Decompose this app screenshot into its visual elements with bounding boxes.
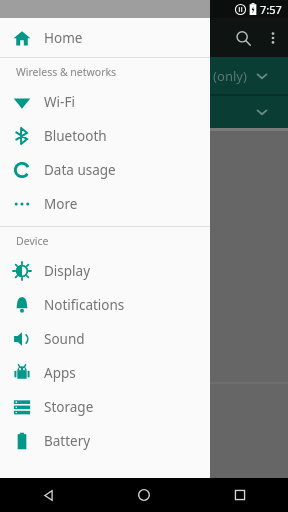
button[interactable]: Home [96,478,192,512]
button[interactable]: Sound [0,322,210,356]
button[interactable]: Battery [0,424,210,458]
staticText: Bluetooth [44,127,107,145]
staticText: Storage [44,398,94,416]
staticText: Display [44,262,91,280]
staticText: Sound [44,330,85,348]
button[interactable]: Bluetooth [0,119,210,153]
staticText: Notifications [44,296,125,314]
staticText: Wireless & networks [16,65,117,79]
button[interactable]: Notifications [0,288,210,322]
button[interactable]: Back [0,478,96,512]
button[interactable]: Wi-Fi [0,85,210,119]
staticText: More [44,195,78,213]
staticText: 7:57 [260,2,282,17]
button[interactable]: Wi-Fi (only) [0,57,288,94]
staticText: Apps [44,364,76,382]
button[interactable]: More [0,187,210,221]
button[interactable]: Apps [0,356,210,390]
button[interactable]: More options [261,26,285,50]
button[interactable]: Home [0,18,210,57]
staticText: Battery [44,432,91,450]
button[interactable]: Recents [192,478,288,512]
button[interactable]: Search [231,26,255,50]
button[interactable] [0,96,288,128]
staticText: Wi-Fi (only) [180,67,247,85]
button[interactable]: Data usage [0,153,210,187]
staticText: Wi-Fi [44,93,75,111]
button[interactable]: Display [0,254,210,288]
staticText: Device [16,234,49,248]
button[interactable]: Storage [0,390,210,424]
staticText: Home [44,29,83,47]
staticText: Data usage [44,161,116,179]
